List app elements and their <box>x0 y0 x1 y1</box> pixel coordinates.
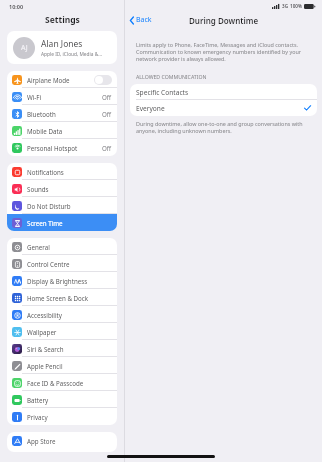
staticText: Battery <box>27 396 112 404</box>
button[interactable]: Home Screen & Dock <box>7 289 117 306</box>
staticText: Wi-Fi <box>27 93 102 101</box>
staticText: Everyone <box>136 104 304 113</box>
staticText: Personal Hotspot <box>27 144 102 152</box>
staticText: 10:00 <box>9 3 24 10</box>
button[interactable]: Apple Pencil <box>7 357 117 374</box>
staticText: Settings <box>45 14 80 26</box>
staticText: During Downtime <box>189 15 259 26</box>
staticText: Screen Time <box>27 219 112 227</box>
staticText: Wallpaper <box>27 328 112 336</box>
button[interactable]: General <box>7 238 117 255</box>
button[interactable]: Everyone <box>130 100 317 116</box>
staticText: 3G <box>282 3 288 9</box>
button[interactable]: Wallpaper <box>7 323 117 340</box>
button[interactable]: Back <box>130 15 152 25</box>
button[interactable]: Siri & Search <box>7 340 117 357</box>
staticText: 100% <box>290 3 302 9</box>
staticText: Off <box>102 93 112 101</box>
button[interactable]: Bluetooth <box>7 105 117 122</box>
button[interactable]: Privacy <box>7 408 117 425</box>
staticText: Back <box>136 15 152 25</box>
button[interactable]: Do Not Disturb <box>7 197 117 214</box>
staticText: Accessibility <box>27 311 112 319</box>
button[interactable]: Personal Hotspot <box>7 139 117 156</box>
staticText: App Store <box>27 437 56 445</box>
staticText: Control Centre <box>27 260 112 268</box>
staticText: Display & Brightness <box>27 277 112 285</box>
staticText: Privacy <box>27 413 112 421</box>
staticText: Bluetooth <box>27 110 102 118</box>
button[interactable]: Mobile Data <box>7 122 117 139</box>
staticText: Face ID & Passcode <box>27 379 112 387</box>
staticText: Home Screen & Dock <box>27 294 112 302</box>
button[interactable]: Airplane Mode toggle <box>94 75 112 85</box>
button[interactable]: Accessibility <box>7 306 117 323</box>
staticText: Notifications <box>27 168 112 176</box>
button[interactable]: Specific Contacts <box>130 84 317 100</box>
staticText: Mobile Data <box>27 127 112 135</box>
staticText: Limits apply to Phone, FaceTime, Message… <box>136 41 311 62</box>
staticText: Alan Jones <box>41 38 83 50</box>
staticText: Do Not Disturb <box>27 202 112 210</box>
button[interactable]: Battery <box>7 391 117 408</box>
staticText: General <box>27 243 112 251</box>
button[interactable]: Face ID & Passcode <box>7 374 117 391</box>
staticText: During downtime, allow one-to-one and gr… <box>136 120 311 134</box>
staticText: Sounds <box>27 185 112 193</box>
staticText: Off <box>102 144 112 152</box>
staticText: Apple Pencil <box>27 362 112 370</box>
button[interactable]: Screen Time <box>7 214 117 231</box>
staticText: Specific Contacts <box>136 88 311 97</box>
staticText: AJ <box>21 43 28 53</box>
button[interactable]: Display & Brightness <box>7 272 117 289</box>
button[interactable]: Notifications <box>7 163 117 180</box>
staticText: Airplane Mode <box>27 76 94 84</box>
button[interactable]: Wi-Fi <box>7 88 117 105</box>
staticText: Apple ID, iCloud, Media &... <box>41 51 103 58</box>
staticText: Off <box>102 110 112 118</box>
staticText: Siri & Search <box>27 345 112 353</box>
button[interactable]: Sounds <box>7 180 117 197</box>
button[interactable]: AJ <box>7 31 117 64</box>
button[interactable]: Airplane Mode <box>7 71 117 88</box>
staticText: ALLOWED COMMUNICATION <box>136 73 207 80</box>
button[interactable]: Control Centre <box>7 255 117 272</box>
